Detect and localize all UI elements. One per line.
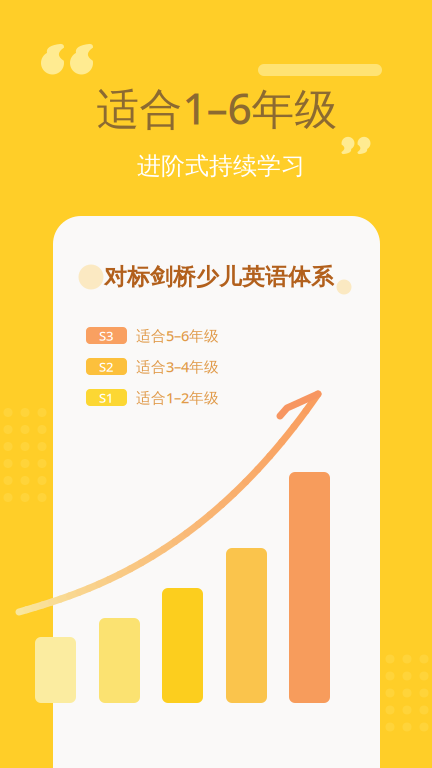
staticText: S2 <box>99 358 114 375</box>
staticText: S3 <box>99 327 114 344</box>
staticText: S1 <box>99 389 114 406</box>
staticText: 适合1–2年级 <box>136 388 219 407</box>
staticText: 进阶式持续学习 <box>137 151 305 181</box>
staticText: 适合5–6年级 <box>136 326 219 345</box>
staticText: 适合1–6年级 <box>96 80 337 136</box>
staticText: 对标剑桥少儿英语体系 <box>104 263 334 291</box>
staticText: 适合3–4年级 <box>136 357 219 376</box>
